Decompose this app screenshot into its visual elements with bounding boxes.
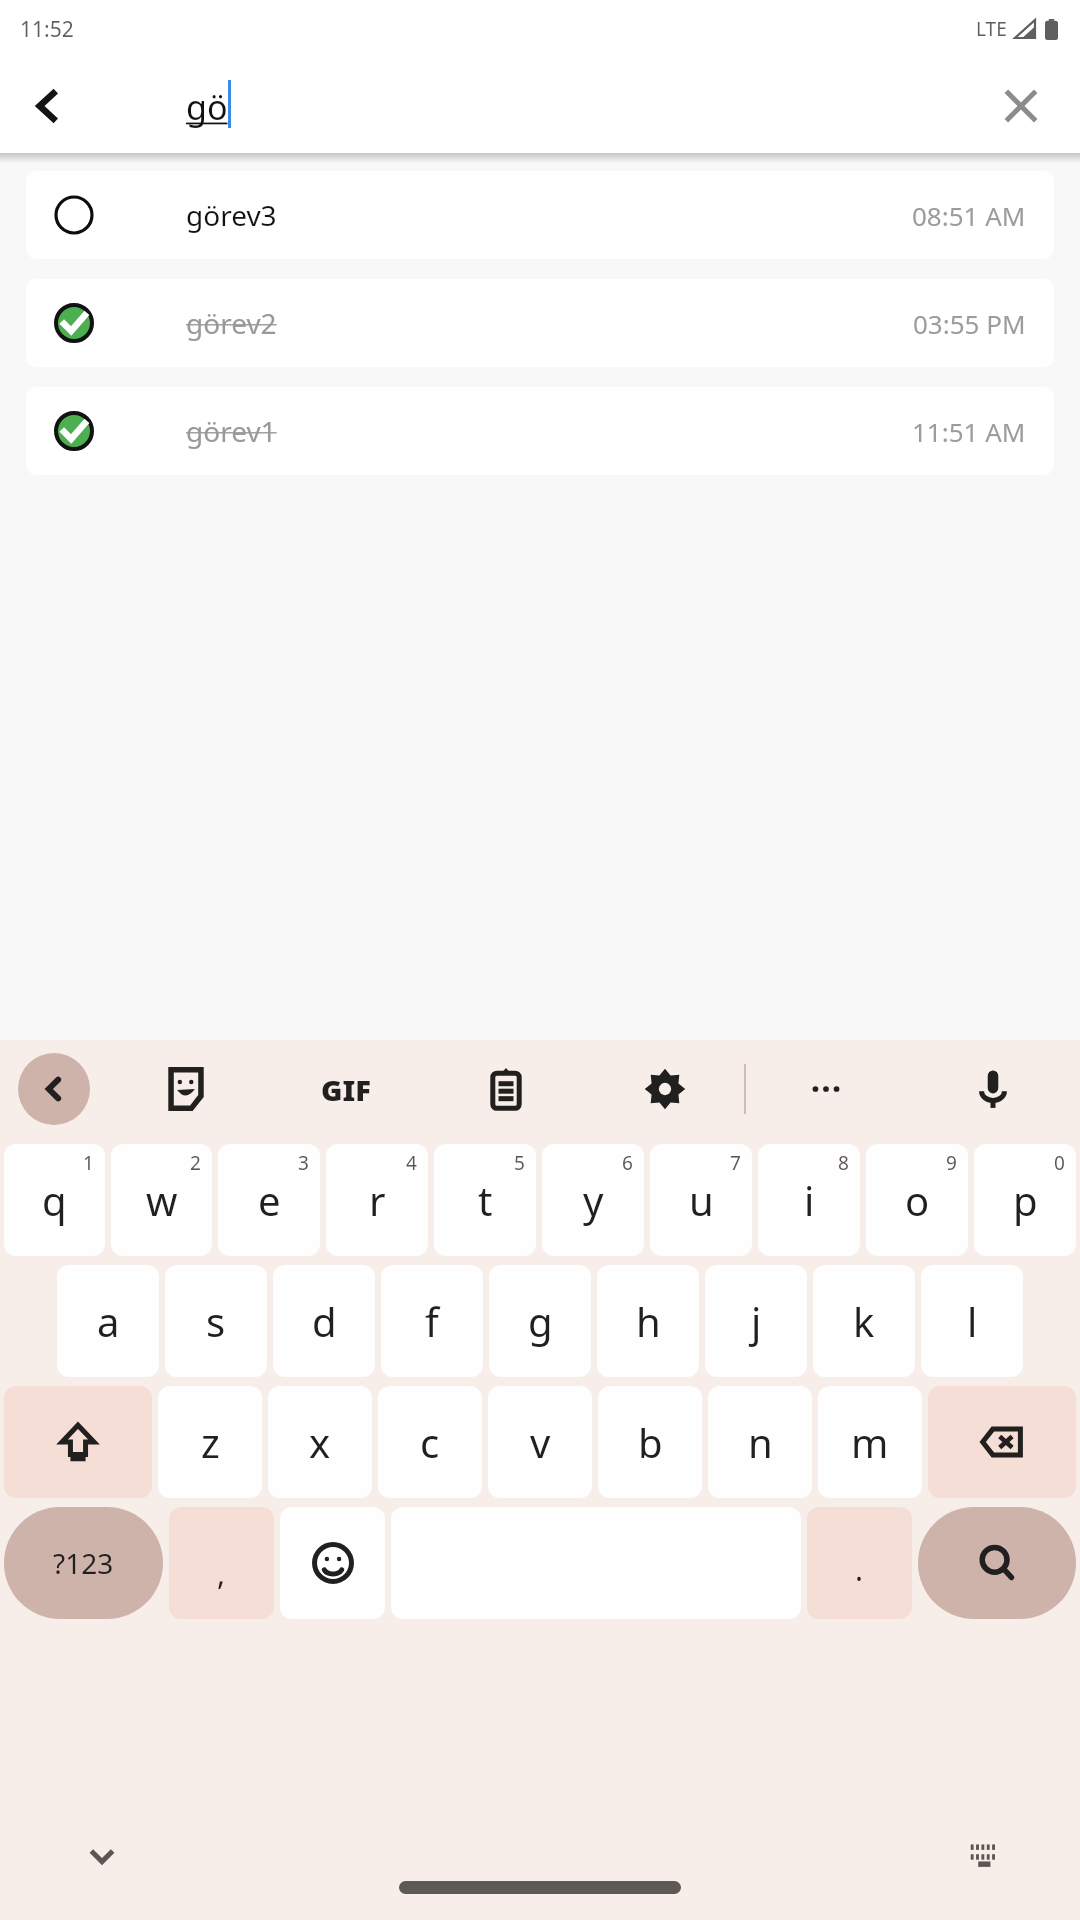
button[interactable]: .	[807, 1507, 912, 1619]
staticText: 4	[406, 1150, 417, 1176]
staticText: gö	[186, 84, 228, 130]
staticText: h	[636, 1294, 661, 1348]
button[interactable]: Clipboard	[426, 1046, 585, 1132]
staticText: v	[530, 1415, 551, 1469]
button[interactable]: w	[111, 1144, 212, 1256]
button[interactable]: Backspace	[928, 1386, 1076, 1498]
staticText: b	[638, 1415, 663, 1469]
staticText: 0	[1054, 1150, 1065, 1176]
button[interactable]: Search	[918, 1507, 1076, 1619]
staticText: j	[751, 1294, 762, 1348]
button[interactable]: Clear search	[984, 69, 1058, 143]
staticText: ?123	[53, 1544, 114, 1582]
staticText: d	[312, 1294, 337, 1348]
button[interactable]: ?123	[4, 1507, 163, 1619]
staticText: LTE	[976, 16, 1007, 42]
button[interactable]: Shift	[4, 1386, 152, 1498]
staticText: r	[369, 1173, 386, 1227]
button[interactable]: y	[542, 1144, 644, 1256]
button[interactable]: i	[758, 1144, 860, 1256]
staticText: 08:51 AM	[912, 198, 1026, 233]
staticText: 11:51 AM	[912, 414, 1026, 449]
staticText: t	[478, 1173, 493, 1227]
button[interactable]: r	[326, 1144, 428, 1256]
staticText: x	[309, 1415, 331, 1469]
button[interactable]: More options	[746, 1046, 905, 1132]
staticText: l	[967, 1294, 978, 1348]
staticText: 7	[730, 1150, 741, 1176]
staticText: p	[1013, 1173, 1038, 1227]
button[interactable]: t	[434, 1144, 536, 1256]
button[interactable]: a	[57, 1265, 159, 1377]
button[interactable]: m	[818, 1386, 922, 1498]
button[interactable]: c	[378, 1386, 482, 1498]
staticText: n	[748, 1415, 773, 1469]
staticText: y	[583, 1173, 604, 1227]
button[interactable]: u	[650, 1144, 752, 1256]
button[interactable]: Hide keyboard	[70, 1824, 134, 1888]
button[interactable]: görev3	[26, 171, 1054, 259]
staticText: 03:55 PM	[913, 306, 1026, 341]
staticText: .	[855, 1549, 864, 1590]
button[interactable]: v	[488, 1386, 592, 1498]
staticText: görev1	[186, 412, 277, 450]
staticText: o	[905, 1173, 930, 1227]
staticText: f	[425, 1294, 439, 1348]
button[interactable]: görev1	[26, 387, 1054, 475]
staticText: w	[146, 1173, 178, 1227]
button[interactable]: d	[273, 1265, 375, 1377]
staticText: ,	[217, 1553, 226, 1594]
staticText: a	[97, 1294, 120, 1348]
staticText: q	[42, 1173, 67, 1227]
button[interactable]: görev2	[26, 279, 1054, 367]
staticText: g	[528, 1294, 553, 1348]
staticText: 5	[514, 1150, 525, 1176]
staticText: görev2	[186, 304, 277, 342]
button[interactable]: n	[708, 1386, 812, 1498]
button[interactable]: Switch keyboard	[954, 1825, 1016, 1887]
button[interactable]: j	[705, 1265, 807, 1377]
staticText: i	[804, 1173, 815, 1227]
button[interactable]: Stickers	[106, 1046, 266, 1132]
button[interactable]: ,	[169, 1507, 274, 1619]
staticText: c	[420, 1415, 440, 1469]
button[interactable]: f	[381, 1265, 483, 1377]
staticText: 9	[946, 1150, 957, 1176]
staticText: 6	[622, 1150, 633, 1176]
button[interactable]: Voice input	[905, 1046, 1080, 1132]
button[interactable]: g	[489, 1265, 591, 1377]
staticText: u	[689, 1173, 714, 1227]
staticText: z	[201, 1415, 220, 1469]
button[interactable]: q	[4, 1144, 105, 1256]
staticText: 3	[298, 1150, 309, 1176]
staticText: GIF	[321, 1070, 371, 1109]
button[interactable]: k	[813, 1265, 915, 1377]
button[interactable]: Emoji	[280, 1507, 385, 1619]
staticText: e	[258, 1173, 281, 1227]
button[interactable]: z	[158, 1386, 262, 1498]
staticText: 2	[190, 1150, 201, 1176]
button[interactable]: p	[974, 1144, 1076, 1256]
button[interactable]: GIF	[266, 1046, 426, 1132]
staticText: 8	[838, 1150, 849, 1176]
button[interactable]: o	[866, 1144, 968, 1256]
staticText: s	[206, 1294, 226, 1348]
button[interactable]: s	[165, 1265, 267, 1377]
staticText: 11:52	[20, 15, 74, 44]
button[interactable]: e	[218, 1144, 320, 1256]
staticText: 1	[83, 1150, 94, 1176]
staticText: k	[853, 1294, 875, 1348]
button[interactable]: Close toolbar	[18, 1053, 90, 1125]
button[interactable]: Settings	[585, 1046, 744, 1132]
button[interactable]: Back	[14, 72, 82, 140]
button[interactable]: b	[598, 1386, 702, 1498]
button[interactable]: l	[921, 1265, 1023, 1377]
button[interactable]: h	[597, 1265, 699, 1377]
staticText: görev3	[186, 196, 277, 234]
staticText: m	[851, 1415, 889, 1469]
button[interactable]: x	[268, 1386, 372, 1498]
